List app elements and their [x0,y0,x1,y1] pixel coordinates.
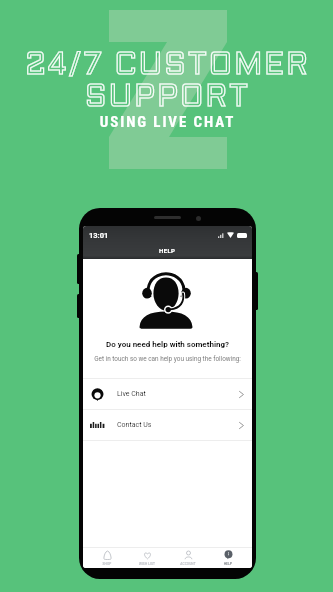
staticText: Contact Us [117,421,152,429]
staticText: Get in touch so we can help you using th… [83,355,252,363]
staticText: 13:01 [89,231,109,240]
staticText: SHOP [90,562,124,566]
staticText: Live Chat [117,390,146,398]
button[interactable]: Live Chat [83,378,252,409]
staticText: HELP [211,562,245,566]
button[interactable]: HELP [211,550,245,566]
staticText: ACCOUNT [171,562,205,566]
staticText: SUPPORT [1,84,333,112]
staticText: Do you need help with something? [83,340,252,349]
staticText: 24/7 CUSTOMER [1,52,333,80]
staticText: USING LIVE CHAT [1,113,333,131]
button[interactable]: WISH LIST [130,550,164,566]
staticText: HELP [159,247,176,254]
button[interactable]: SHOP [90,550,124,566]
staticText: WISH LIST [130,562,164,566]
button[interactable]: Contact Us [83,409,252,440]
button[interactable]: ACCOUNT [171,550,205,566]
